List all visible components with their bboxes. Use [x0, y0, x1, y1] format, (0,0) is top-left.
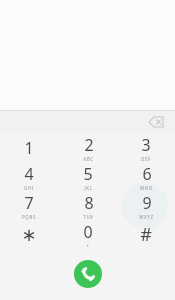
- staticText: +: [86, 243, 90, 249]
- staticText: PQRS: [22, 214, 36, 220]
- staticText: 7: [24, 192, 34, 214]
- staticText: 9: [142, 192, 152, 214]
- staticText: #: [140, 222, 152, 247]
- staticText: ∗: [21, 224, 37, 245]
- button[interactable]: 5: [59, 162, 117, 191]
- staticText: JKL: [84, 185, 93, 191]
- staticText: GHI: [24, 185, 34, 191]
- button[interactable]: #: [117, 220, 175, 249]
- staticText: 4: [24, 163, 34, 185]
- staticText: 8: [84, 192, 94, 214]
- staticText: MNO: [140, 185, 153, 191]
- staticText: 3: [141, 134, 151, 156]
- button[interactable]: 6: [117, 162, 175, 191]
- button[interactable]: 1: [0, 133, 58, 162]
- staticText: 1: [24, 137, 34, 159]
- staticText: WXYZ: [139, 214, 154, 220]
- button[interactable]: 7: [0, 191, 58, 220]
- button[interactable]: ∗: [0, 220, 58, 249]
- staticText: 6: [142, 163, 152, 185]
- staticText: ABC: [83, 156, 94, 162]
- staticText: 0: [83, 221, 93, 243]
- staticText: TUV: [83, 214, 94, 220]
- button[interactable]: Call: [74, 260, 102, 288]
- staticText: 2: [84, 134, 94, 156]
- button[interactable]: 3: [117, 133, 175, 162]
- button[interactable]: 9: [117, 191, 175, 220]
- staticText: 5: [83, 163, 93, 185]
- button[interactable]: Backspace: [143, 112, 169, 132]
- button[interactable]: 2: [59, 133, 117, 162]
- button[interactable]: 0: [59, 220, 117, 249]
- button[interactable]: 8: [59, 191, 117, 220]
- button[interactable]: 4: [0, 162, 58, 191]
- staticText: DEF: [141, 156, 151, 162]
